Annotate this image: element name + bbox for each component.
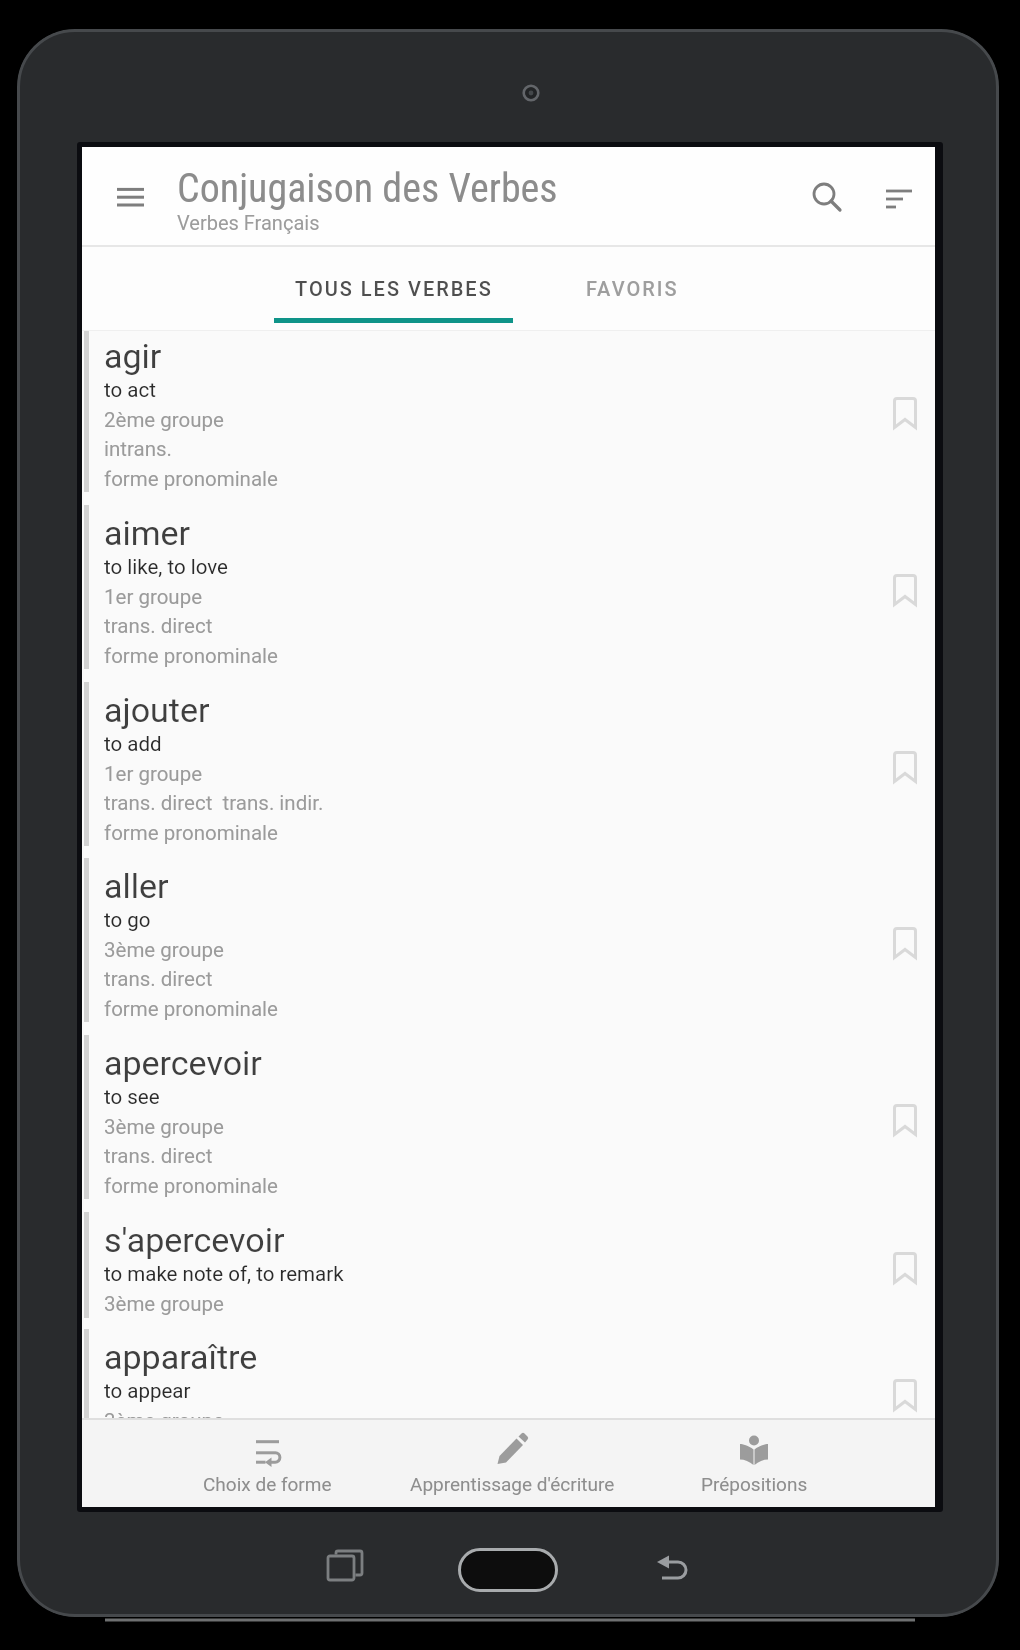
staticText: 3ème groupe xyxy=(104,938,224,962)
button[interactable] xyxy=(796,166,856,226)
button[interactable] xyxy=(82,328,935,492)
staticText: trans. direct xyxy=(104,1144,213,1168)
button[interactable]: FAVORIS xyxy=(513,247,752,330)
staticText: to see xyxy=(104,1085,160,1109)
button[interactable] xyxy=(870,166,926,226)
button[interactable]: TOUS LES VERBES xyxy=(274,247,513,330)
staticText: 1er groupe xyxy=(104,762,203,786)
staticText: trans. direct xyxy=(104,967,213,991)
button[interactable] xyxy=(82,1035,935,1199)
button[interactable] xyxy=(881,566,929,614)
staticText: to appear xyxy=(104,1379,191,1403)
staticText: ajouter xyxy=(104,690,210,730)
staticText: 2ème groupe xyxy=(104,408,224,432)
staticText: Prépositions xyxy=(701,1473,808,1495)
staticText: TOUS LES VERBES xyxy=(295,277,493,300)
staticText: Verbes Français xyxy=(177,211,320,234)
staticText: forme pronominale xyxy=(104,467,278,491)
staticText: to go xyxy=(104,908,151,932)
button[interactable] xyxy=(82,1212,935,1318)
staticText: 3ème groupe xyxy=(104,1115,224,1139)
staticText: aimer xyxy=(104,513,191,553)
button[interactable] xyxy=(167,1418,367,1507)
staticText: 3ème groupe xyxy=(104,1409,224,1433)
staticText: trans. direct xyxy=(104,614,213,638)
button[interactable] xyxy=(112,181,150,213)
staticText: forme pronominale xyxy=(104,644,278,668)
staticText: 1er groupe xyxy=(104,585,203,609)
button[interactable] xyxy=(392,1418,632,1507)
staticText: to add xyxy=(104,732,162,756)
button[interactable] xyxy=(881,1244,929,1292)
button[interactable] xyxy=(881,1371,929,1419)
staticText: forme pronominale xyxy=(104,997,278,1021)
staticText: to act xyxy=(104,378,156,402)
staticText: trans. direct trans. indir. xyxy=(104,791,324,815)
staticText: Apprentissage d'écriture xyxy=(410,1473,615,1495)
staticText: apercevoir xyxy=(104,1043,262,1083)
staticText: to like, to love xyxy=(104,555,228,579)
staticText: forme pronominale xyxy=(104,821,278,845)
staticText: FAVORIS xyxy=(586,277,679,300)
button[interactable] xyxy=(82,505,935,669)
staticText: forme pronominale xyxy=(104,1174,278,1198)
staticText: Conjugaison des Verbes xyxy=(177,165,558,212)
staticText: aller xyxy=(104,866,169,906)
button[interactable] xyxy=(82,1329,935,1418)
staticText: to make note of, to remark xyxy=(104,1262,344,1286)
button[interactable] xyxy=(82,858,935,1022)
staticText: s'apercevoir xyxy=(104,1220,285,1260)
button[interactable] xyxy=(664,1418,844,1507)
staticText: agir xyxy=(104,336,162,376)
button[interactable] xyxy=(881,743,929,791)
button[interactable] xyxy=(881,919,929,967)
button[interactable] xyxy=(82,682,935,846)
button[interactable] xyxy=(881,1096,929,1144)
staticText: apparaître xyxy=(104,1337,258,1377)
staticText: intrans. xyxy=(104,437,173,461)
staticText: 3ème groupe xyxy=(104,1292,224,1316)
button[interactable] xyxy=(881,389,929,437)
staticText: Choix de forme xyxy=(203,1473,332,1495)
